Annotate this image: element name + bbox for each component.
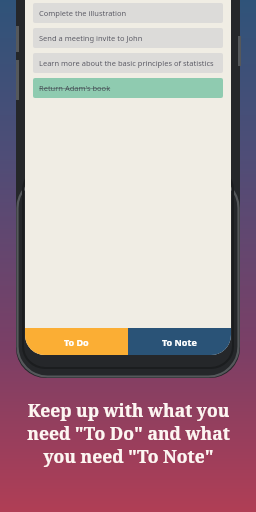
button[interactable]: Complete the illustration <box>33 3 223 23</box>
staticText: Return Adam's book <box>39 83 111 93</box>
button[interactable]: Learn more about the basic principles of… <box>33 53 223 73</box>
staticText: Keep up with what you need "To Do" and w… <box>27 398 230 468</box>
staticText: Send a meeting invite to John <box>39 33 143 43</box>
staticText: Learn more about the basic principles of… <box>39 58 214 68</box>
button[interactable]: To Note <box>128 328 231 355</box>
button[interactable]: Send a meeting invite to John <box>33 28 223 48</box>
button[interactable]: Return Adam's book <box>33 78 223 98</box>
staticText: To Note <box>162 336 197 348</box>
staticText: To Do <box>64 336 89 348</box>
button[interactable]: To Do <box>25 328 128 355</box>
staticText: Complete the illustration <box>39 8 127 18</box>
